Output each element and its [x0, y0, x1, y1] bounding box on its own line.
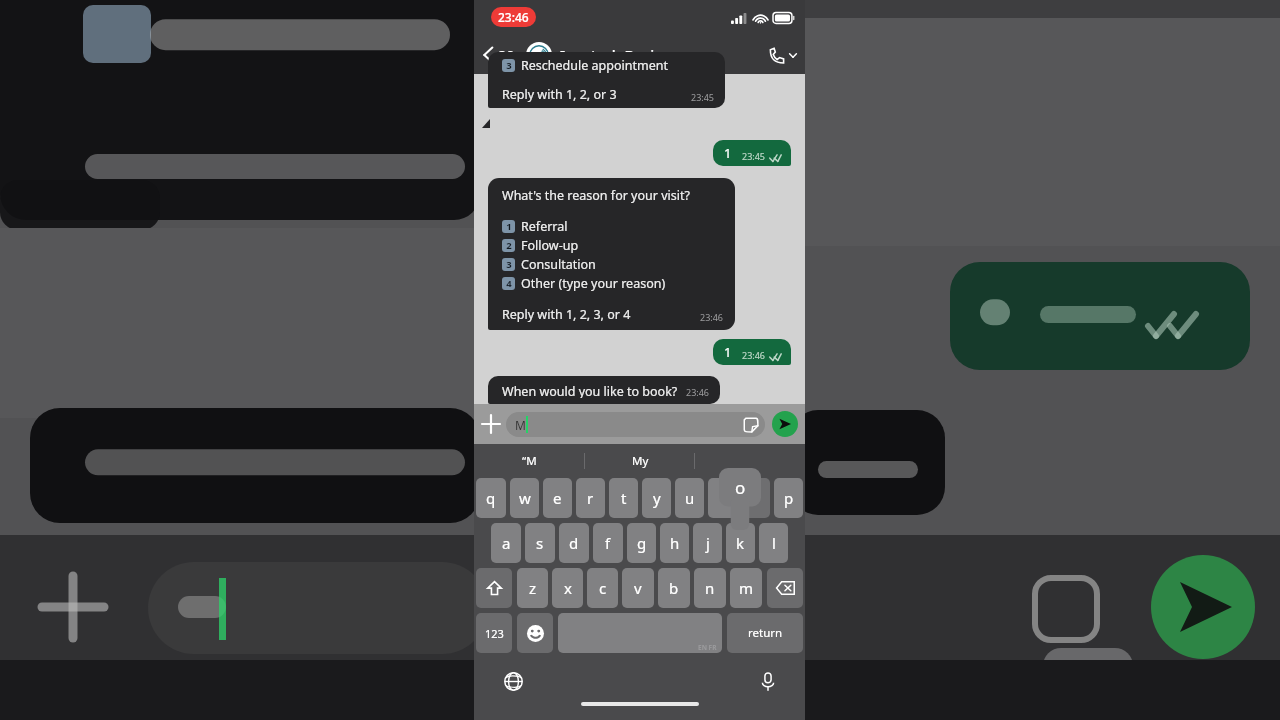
staticText: p [784, 488, 794, 508]
button[interactable]: Shift [476, 568, 512, 608]
staticText: Invotech Business [560, 45, 686, 65]
button[interactable]: p [774, 478, 803, 518]
staticText: m [739, 578, 754, 598]
staticText: y [653, 488, 661, 508]
staticText: s [536, 533, 544, 553]
button[interactable]: What's the reason for your visit? [488, 178, 735, 330]
button[interactable]: “M [474, 444, 585, 478]
staticText: 23:45 [691, 91, 715, 103]
staticText: 1 [724, 144, 732, 162]
staticText: 2 [506, 239, 512, 252]
button[interactable]: d [559, 523, 589, 563]
staticText: c [599, 578, 607, 598]
button[interactable]: s [525, 523, 555, 563]
button[interactable]: q [476, 478, 506, 518]
button[interactable]: Send [772, 411, 798, 437]
button[interactable]: c [587, 568, 618, 608]
button[interactable]: x [552, 568, 583, 608]
button[interactable]: v [622, 568, 654, 608]
button[interactable]: Dictate [755, 666, 781, 697]
staticText: Reschedule appointment [521, 57, 668, 74]
button[interactable]: n [694, 568, 726, 608]
button[interactable]: y [642, 478, 671, 518]
staticText: Referral [521, 218, 568, 235]
staticText: n [705, 578, 715, 598]
staticText: When would you like to book? [502, 383, 678, 398]
button[interactable]: 1 [713, 339, 791, 365]
staticText: Reply with 1, 2, 3, or 4 [502, 306, 631, 323]
button[interactable]: Call [761, 41, 805, 70]
button[interactable]: Numbers [476, 613, 512, 653]
button[interactable]: When would you like to book? [488, 376, 720, 404]
staticText: 23:46 [700, 311, 724, 323]
button[interactable] [695, 444, 805, 478]
button[interactable]: Invotech Business profile [526, 42, 552, 68]
button[interactable]: return [727, 613, 803, 653]
staticText: My [632, 453, 649, 469]
button[interactable]: 2 [502, 237, 579, 254]
staticText: r [587, 488, 594, 508]
button[interactable]: Emoji [517, 613, 553, 653]
button[interactable]: 1 [713, 140, 791, 166]
button[interactable]: m [730, 568, 762, 608]
button[interactable]: g [627, 523, 656, 563]
button[interactable]: 4 [502, 275, 666, 292]
button[interactable]: t [609, 478, 638, 518]
staticText: Follow-up [521, 237, 579, 254]
button[interactable]: Back, 20 unread [474, 41, 519, 69]
staticText: z [529, 578, 537, 598]
button[interactable]: Backspace [767, 568, 803, 608]
staticText: k [736, 533, 745, 553]
staticText: g [637, 533, 647, 553]
button[interactable]: u [675, 478, 704, 518]
staticText: Other (type your reason) [521, 275, 666, 292]
button[interactable] [741, 478, 770, 518]
button[interactable]: 3 [488, 52, 725, 108]
button[interactable]: f [593, 523, 623, 563]
staticText: 23:45 [742, 150, 766, 162]
staticText: 1 [724, 343, 732, 361]
staticText: o [735, 476, 746, 499]
button[interactable]: a [491, 523, 521, 563]
button[interactable]: 3 [502, 256, 596, 273]
staticText: 1 [506, 220, 512, 233]
staticText: f [605, 533, 611, 553]
staticText: t [621, 488, 627, 508]
button[interactable]: w [510, 478, 539, 518]
button[interactable]: i [708, 478, 737, 518]
staticText: EN FR [698, 643, 717, 652]
button[interactable]: z [517, 568, 548, 608]
staticText: b [669, 578, 679, 598]
button[interactable]: r [576, 478, 605, 518]
staticText: 3 [506, 258, 512, 271]
staticText: j [706, 533, 710, 553]
button[interactable]: j [693, 523, 722, 563]
staticText: u [685, 488, 695, 508]
staticText: w [519, 488, 531, 508]
button[interactable]: M [506, 412, 765, 437]
staticText: 23:46 [742, 349, 766, 361]
button[interactable]: k [726, 523, 755, 563]
button[interactable]: e [543, 478, 572, 518]
button[interactable]: b [658, 568, 690, 608]
staticText: a [502, 533, 511, 553]
staticText: Reply with 1, 2, or 3 [502, 86, 617, 103]
button[interactable]: Attach [474, 407, 504, 441]
staticText: 123 [485, 626, 504, 641]
button[interactable]: 1 [502, 218, 568, 235]
staticText: 20 [498, 45, 515, 65]
button[interactable]: Space [558, 613, 722, 653]
staticText: x [564, 578, 572, 598]
staticText: 23:46 [686, 386, 710, 398]
staticText: “M [522, 453, 537, 469]
button[interactable]: l [759, 523, 788, 563]
button[interactable]: Stickers [743, 417, 759, 433]
button[interactable]: My [585, 444, 695, 478]
button[interactable]: Change keyboard [498, 666, 529, 697]
staticText: M [515, 417, 526, 433]
button[interactable]: h [660, 523, 689, 563]
staticText: 3 [506, 59, 512, 72]
staticText: return [748, 625, 783, 641]
staticText: l [772, 533, 776, 553]
